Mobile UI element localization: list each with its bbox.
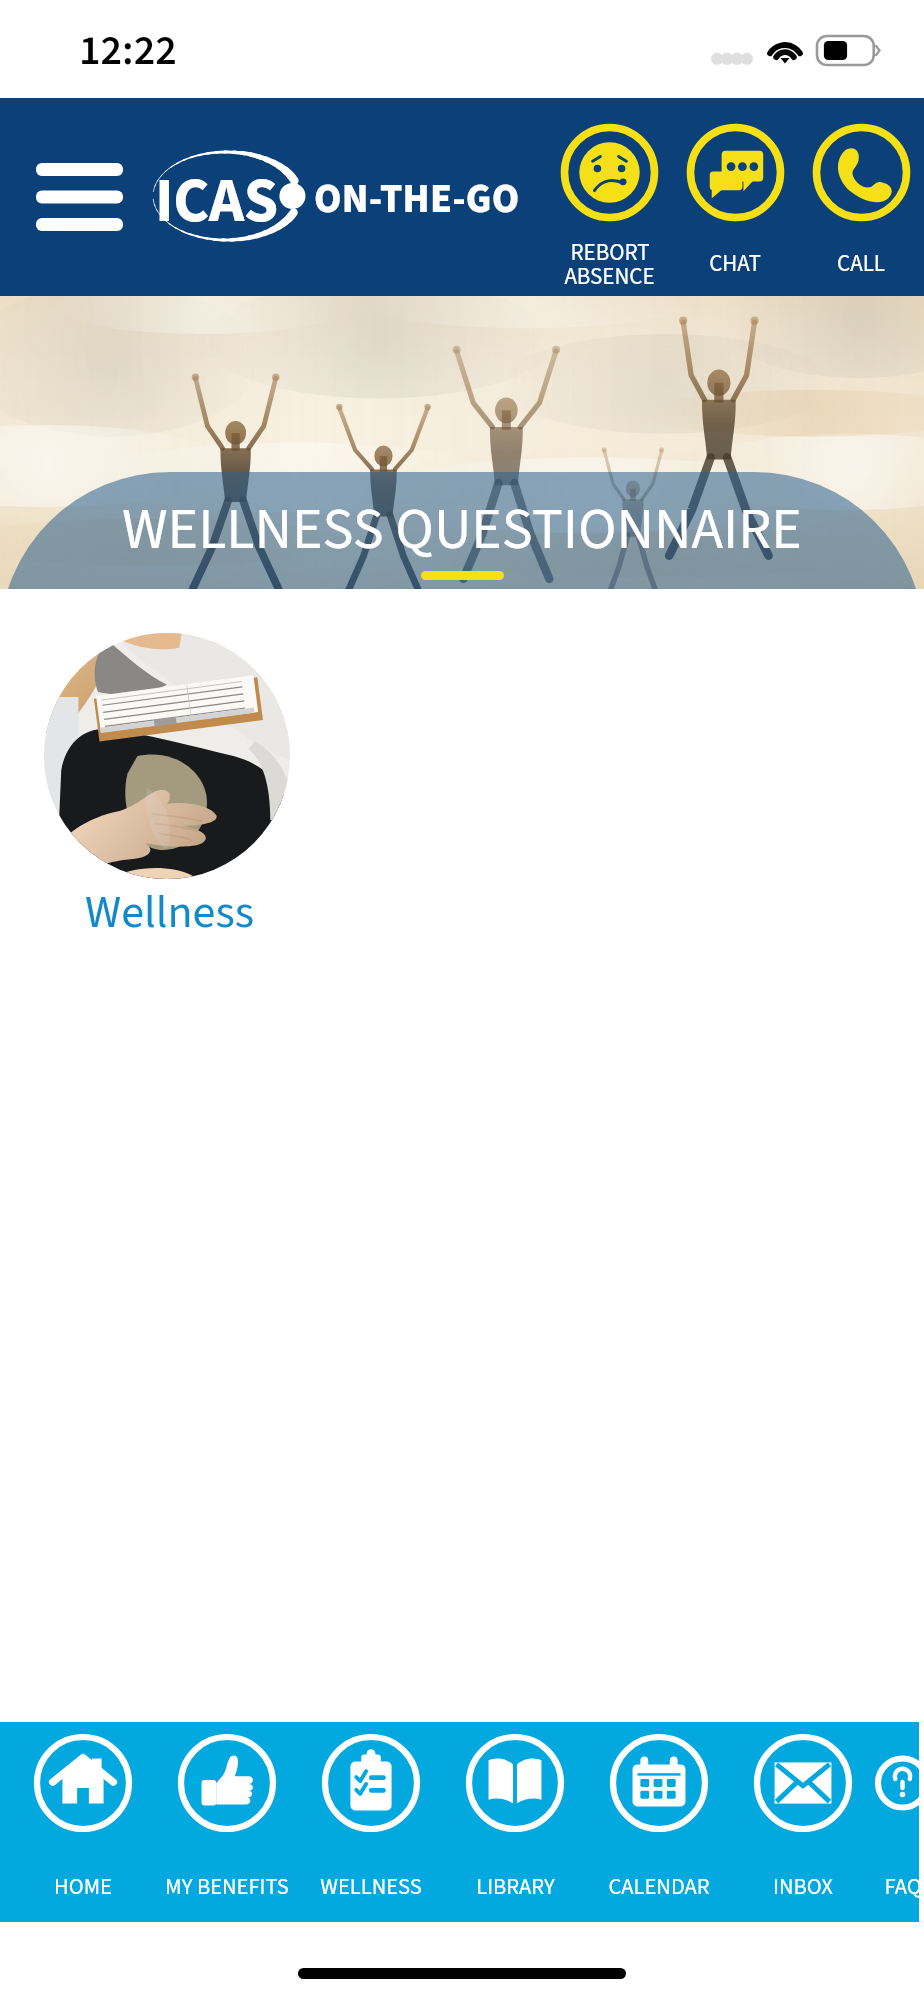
staticText: WELLNESS QUESTIONNAIRE bbox=[122, 489, 802, 572]
staticText: INBOX bbox=[773, 1871, 833, 1903]
button[interactable]: FAQ bbox=[875, 1722, 924, 1922]
button[interactable]: LIBRARY bbox=[443, 1722, 587, 1922]
staticText: HOME bbox=[54, 1871, 112, 1903]
staticText: CALENDAR bbox=[608, 1871, 710, 1903]
staticText: REBORT bbox=[570, 236, 650, 260]
button[interactable]: CHAT bbox=[672, 123, 798, 284]
staticText: CHAT bbox=[709, 247, 761, 271]
button[interactable]: Wellness bbox=[44, 633, 294, 946]
staticText: CALL bbox=[837, 247, 885, 271]
staticText: MY BENEFITS bbox=[165, 1871, 289, 1903]
staticText: FAQ bbox=[884, 1871, 922, 1903]
button[interactable]: INBOX bbox=[731, 1722, 875, 1922]
button[interactable]: CALENDAR bbox=[587, 1722, 731, 1922]
staticText: ON-THE-GO bbox=[314, 171, 520, 228]
staticText: LIBRARY bbox=[476, 1871, 555, 1903]
staticText: ICAS bbox=[155, 158, 278, 246]
staticText: 12:22 bbox=[79, 21, 177, 81]
button[interactable]: HOME bbox=[11, 1722, 155, 1922]
staticText: Wellness bbox=[85, 880, 254, 946]
button[interactable]: CALL bbox=[798, 123, 924, 284]
button[interactable]: WELLNESS bbox=[299, 1722, 443, 1922]
staticText: ABSENCE bbox=[564, 260, 655, 284]
button[interactable]: REBORT bbox=[546, 123, 672, 284]
staticText: WELLNESS bbox=[320, 1871, 422, 1903]
button[interactable]: Menu bbox=[18, 149, 140, 245]
button[interactable]: ICAS On-The-Go home bbox=[153, 152, 533, 244]
button[interactable]: MY BENEFITS bbox=[155, 1722, 299, 1922]
